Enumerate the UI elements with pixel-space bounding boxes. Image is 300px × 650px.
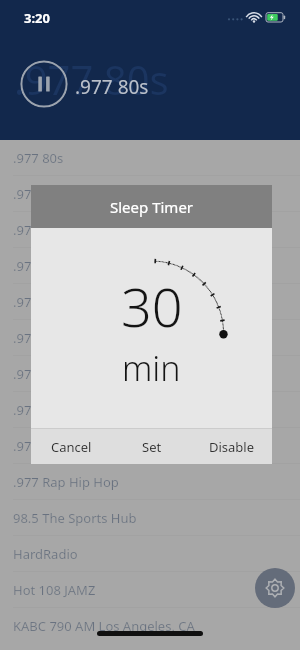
button[interactable]: Set (112, 429, 192, 464)
staticText: .977 Country (13, 257, 92, 275)
staticText: KABC 790 AM Los Angeles, CA (13, 617, 195, 635)
staticText: HardRadio (13, 545, 78, 563)
button[interactable]: .977 Comedy (0, 212, 300, 247)
button[interactable]: .977 Oldies (0, 428, 300, 463)
staticText: .977 Classic Rock (13, 185, 116, 203)
button[interactable]: .977 Jamz (0, 320, 300, 355)
staticText: .977 Nothin but 80s (13, 401, 133, 419)
button[interactable]: 98.5 The Sports Hub (0, 500, 300, 535)
button[interactable]: HardRadio (0, 536, 300, 571)
staticText: .977 80s (13, 149, 64, 167)
staticText: .977 Oldies (13, 437, 81, 455)
staticText: Set (142, 438, 162, 456)
staticText: 30 (121, 269, 183, 343)
button[interactable]: .977 Mix (0, 356, 300, 391)
button[interactable]: .977 Nothin but 80s (0, 392, 300, 427)
staticText: Cancel (51, 438, 92, 456)
button[interactable]: Cancel (31, 429, 112, 464)
staticText: .977 Rap Hip Hop (13, 473, 119, 491)
staticText: Disable (209, 438, 255, 456)
staticText: min (122, 345, 181, 391)
button[interactable]: Settings (255, 568, 295, 608)
staticText: .977 Comedy (13, 221, 93, 239)
staticText: .977 80s (75, 74, 149, 100)
staticText: 3:20 (24, 9, 50, 27)
button[interactable]: .977 Classic Rock (0, 176, 300, 211)
button[interactable]: Hot 108 JAMZ (0, 572, 300, 607)
staticText: 98.5 The Sports Hub (13, 509, 137, 527)
button[interactable]: KABC 790 AM Los Angeles, CA (0, 608, 300, 643)
button[interactable]: .977 Country (0, 248, 300, 283)
button[interactable]: Disable (192, 429, 272, 464)
staticText: .977 Hitz (13, 293, 66, 311)
staticText: Hot 108 JAMZ (13, 581, 96, 599)
button[interactable]: .977 Rap Hip Hop (0, 464, 300, 499)
staticText: Sleep Timer (110, 197, 194, 217)
staticText: .977 80s (14, 52, 169, 106)
button[interactable]: .977 80s (0, 140, 300, 175)
button[interactable]: Pause (20, 60, 68, 108)
button[interactable]: .977 Hitz (0, 284, 300, 319)
staticText: .977 Mix (13, 365, 65, 383)
staticText: .977 Jamz (13, 329, 72, 347)
